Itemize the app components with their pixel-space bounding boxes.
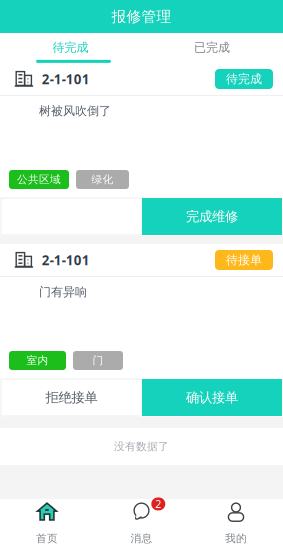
staticText: 待完成: [52, 40, 88, 55]
staticText: 2: [155, 497, 161, 511]
staticText: 2-1-101: [42, 70, 90, 88]
staticText: 公共区域: [17, 173, 61, 186]
staticText: 室内: [26, 354, 48, 367]
staticText: 待完成: [226, 72, 262, 86]
staticText: 树被风吹倒了: [39, 104, 111, 118]
staticText: 报修管理: [111, 7, 171, 25]
staticText: 首页: [36, 532, 58, 545]
staticText: 拒绝接单: [45, 389, 97, 406]
staticText: 门有异响: [39, 285, 87, 299]
button[interactable]: 2: [94, 499, 189, 550]
staticText: 待接单: [226, 253, 262, 267]
button[interactable]: 已完成: [141, 33, 283, 63]
staticText: 完成维修: [186, 208, 238, 225]
button[interactable]: 待完成: [0, 33, 141, 63]
staticText: 没有数据了: [114, 440, 169, 453]
staticText: 消息: [130, 532, 152, 545]
button[interactable]: 确认接单: [142, 379, 282, 416]
staticText: 我的: [225, 532, 247, 545]
button[interactable]: 首页: [0, 499, 94, 550]
button[interactable]: 完成维修: [142, 198, 282, 235]
button[interactable]: 拒绝接单: [1, 379, 142, 416]
staticText: 已完成: [194, 40, 230, 55]
button[interactable]: 我的: [189, 499, 283, 550]
staticText: 2-1-101: [42, 251, 90, 269]
staticText: 确认接单: [186, 389, 238, 406]
staticText: 门: [92, 354, 103, 367]
staticText: 绿化: [91, 173, 113, 186]
